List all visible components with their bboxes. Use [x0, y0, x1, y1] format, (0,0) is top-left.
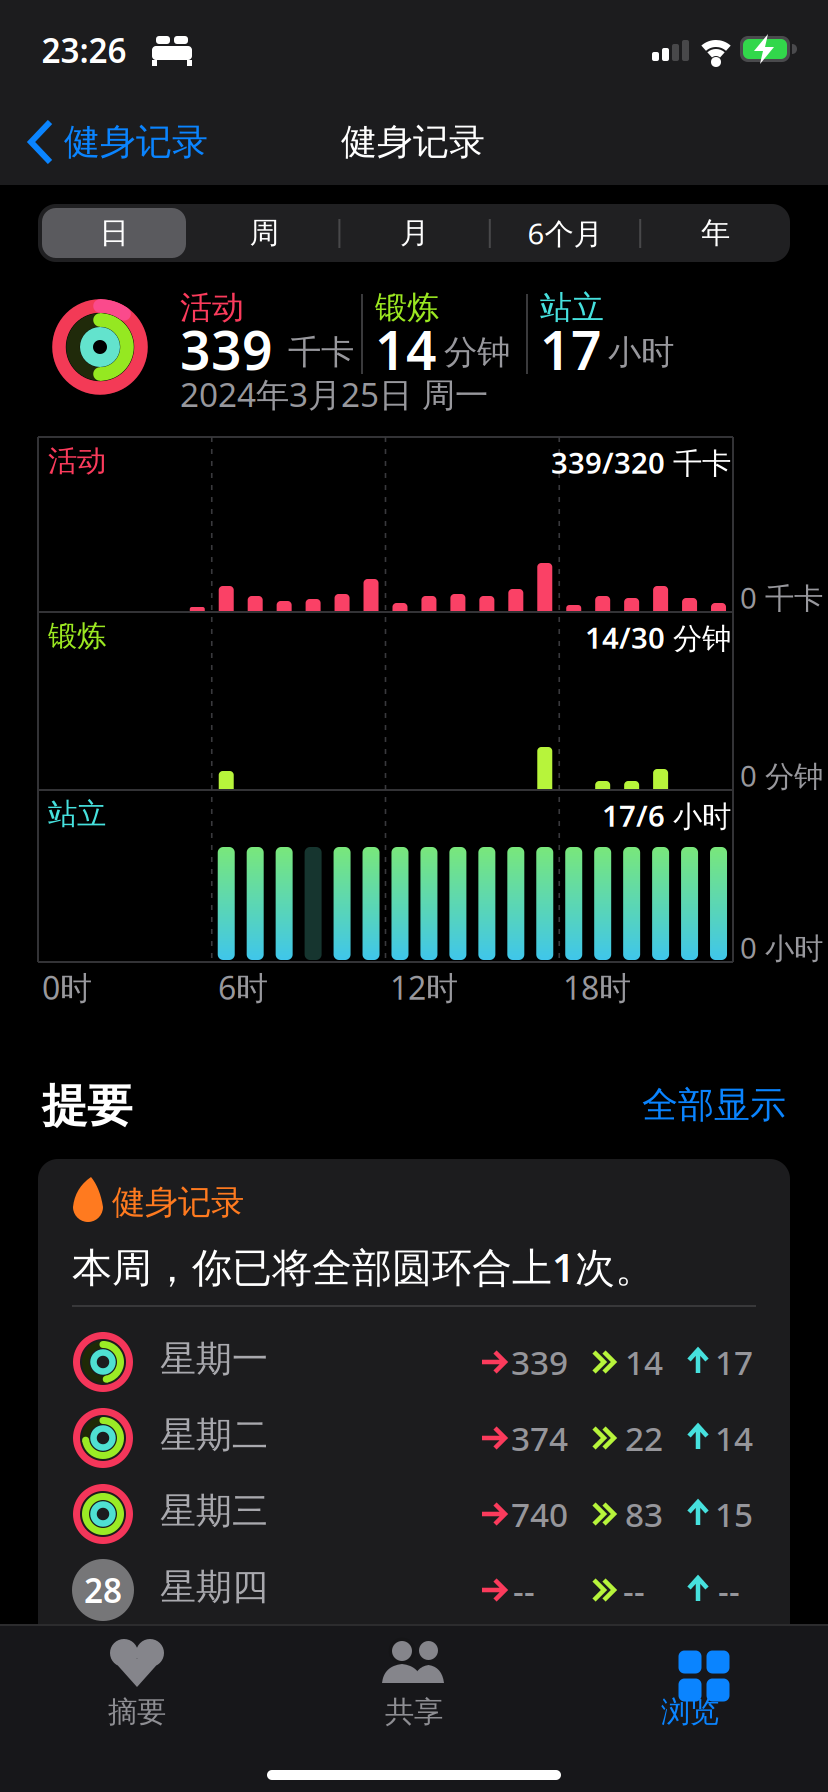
button[interactable]: 摘要 [0, 0, 828, 1792]
staticText: 周 [250, 215, 279, 251]
staticText: 健身记录 [112, 1182, 244, 1223]
staticText: 14 [375, 314, 437, 385]
staticText: 活动 [180, 288, 244, 327]
staticText: 共享 [385, 1694, 443, 1730]
button[interactable]: 健身记录 [0, 0, 828, 1792]
staticText: 15 [715, 1492, 753, 1536]
staticText: 14/30 分钟 [585, 618, 731, 657]
staticText: 星期四 [160, 1565, 268, 1609]
staticText: 18时 [563, 966, 631, 1008]
staticText: 浏览 [661, 1694, 719, 1730]
staticText: 锻炼 [375, 288, 439, 327]
staticText: 月 [400, 215, 429, 251]
staticText: 星期一 [160, 1337, 268, 1381]
staticText: 全部显示 [642, 1083, 786, 1127]
staticText: 健身记录 [64, 120, 208, 164]
staticText: 摘要 [108, 1694, 166, 1730]
staticText: 14 [625, 1340, 663, 1384]
button[interactable]: 月 [0, 0, 828, 1792]
staticText: 339 [511, 1340, 568, 1384]
button[interactable]: 日 [0, 0, 828, 1792]
staticText: 17/6 小时 [602, 796, 731, 835]
staticText: 日 [99, 215, 128, 251]
staticText: 站立 [48, 796, 106, 832]
staticText: 2024年3月25日 周一 [180, 372, 488, 416]
button[interactable]: 周 [0, 0, 828, 1792]
staticText: 17 [715, 1340, 753, 1384]
staticText: -- [623, 1568, 645, 1612]
staticText: 年 [701, 215, 730, 251]
staticText: 17 [540, 314, 602, 385]
staticText: 本周，你已将全部圆环合上1次。 [72, 1240, 655, 1293]
staticText: 星期三 [160, 1489, 268, 1533]
staticText: 22 [625, 1416, 663, 1460]
staticText: 提要 [42, 1078, 132, 1134]
staticText: 374 [511, 1416, 568, 1460]
staticText: 活动 [48, 443, 106, 479]
staticText: 站立 [540, 288, 604, 327]
staticText: 6时 [218, 966, 268, 1008]
button[interactable]: 共享 [0, 0, 828, 1792]
staticText: 740 [511, 1492, 568, 1536]
staticText: 83 [625, 1492, 663, 1536]
staticText: 锻炼 [48, 618, 106, 654]
button[interactable]: 健身记录 [0, 0, 828, 1792]
staticText: 339 [180, 314, 273, 385]
staticText: -- [718, 1568, 740, 1612]
staticText: 23:26 [41, 28, 126, 72]
staticText: 6个月 [527, 213, 602, 252]
button[interactable]: 全部显示 [0, 0, 828, 1792]
staticText: 分钟 [444, 332, 510, 373]
staticText: 0 千卡 [740, 578, 823, 617]
button[interactable]: 年 [0, 0, 828, 1792]
staticText: 12时 [390, 966, 458, 1008]
button[interactable]: 6个月 [0, 0, 828, 1792]
staticText: -- [513, 1568, 535, 1612]
staticText: 小时 [608, 332, 674, 373]
staticText: 星期二 [160, 1413, 268, 1457]
staticText: 28 [84, 1568, 122, 1612]
button[interactable]: 浏览 [0, 0, 828, 1792]
staticText: 健身记录 [341, 120, 485, 164]
staticText: 0 小时 [740, 928, 823, 967]
staticText: 339/320 千卡 [551, 443, 731, 482]
staticText: 14 [715, 1416, 753, 1460]
staticText: 0时 [42, 966, 92, 1008]
staticText: 千卡 [288, 332, 354, 373]
staticText: 0 分钟 [740, 756, 823, 795]
